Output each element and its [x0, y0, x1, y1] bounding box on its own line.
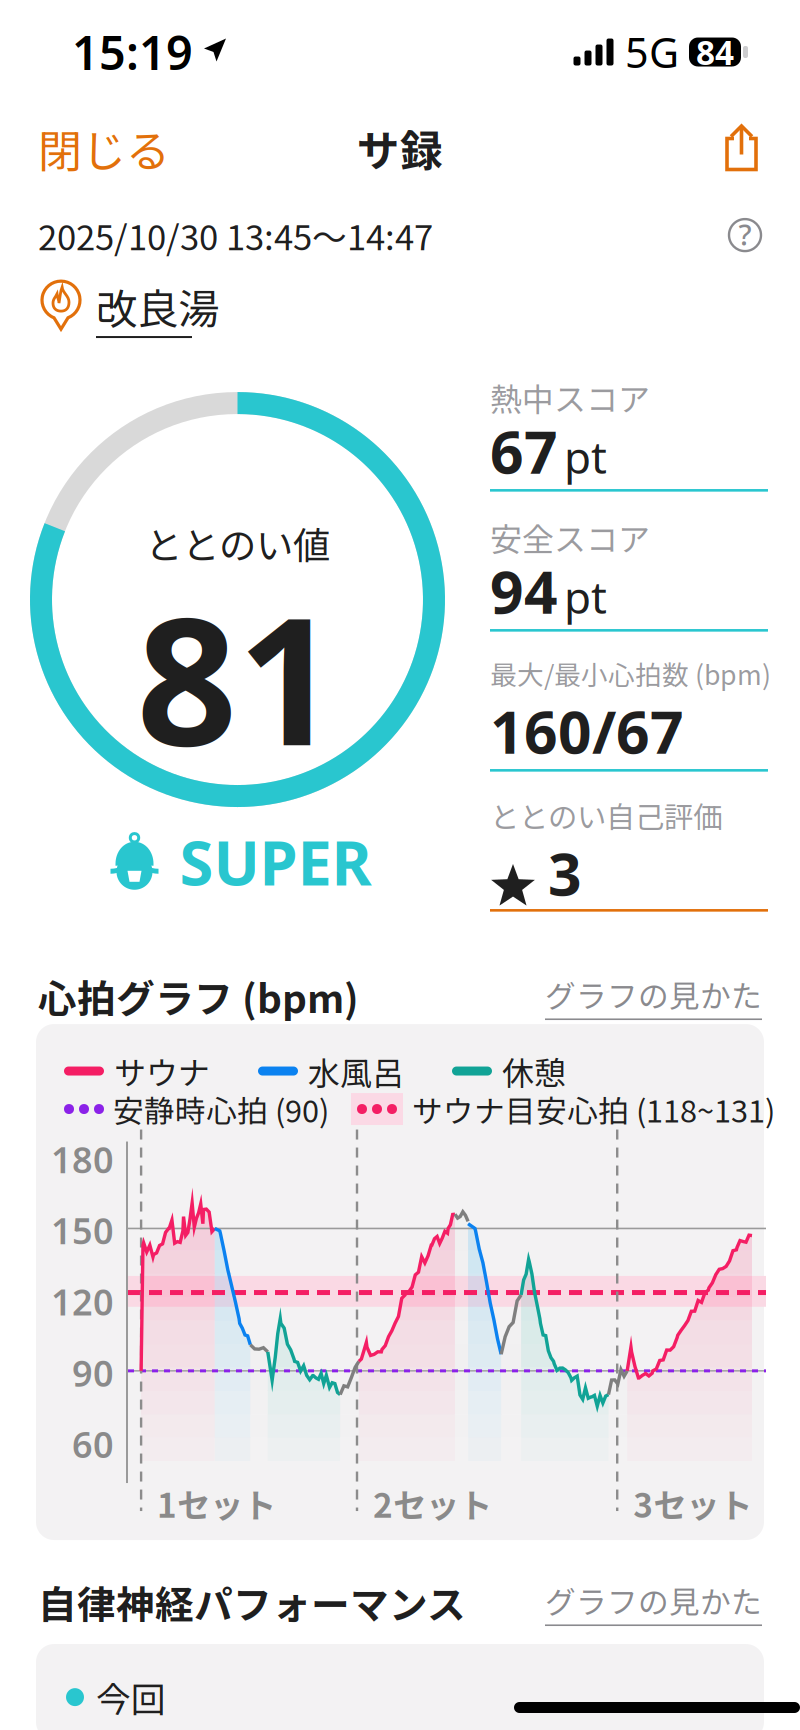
staticText: 60	[72, 1420, 114, 1468]
staticText: 自律神経パフォーマンス	[38, 1574, 466, 1630]
staticText: 3セット	[633, 1479, 752, 1527]
button[interactable]: ヘルプ	[728, 218, 762, 252]
staticText: 最大/最小心拍数 (bpm)	[490, 654, 771, 693]
staticText: サウナ	[114, 1048, 210, 1094]
staticText: 67	[490, 412, 558, 490]
staticText: 160/67	[490, 692, 684, 770]
staticText: 3	[548, 834, 582, 912]
staticText: 安静時心拍 (90)	[113, 1087, 329, 1131]
staticText: 180	[51, 1135, 114, 1183]
staticText: 5G	[625, 25, 679, 79]
staticText: SUPER	[179, 821, 371, 902]
staticText: 81	[136, 560, 338, 794]
button[interactable]: グラフの見かた	[545, 972, 762, 1020]
button[interactable]: グラフの見かた	[545, 1578, 762, 1626]
staticText: 2025/10/30 13:45〜14:47	[38, 210, 433, 260]
button[interactable]: 共有	[721, 118, 762, 177]
staticText: pt	[564, 567, 607, 626]
staticText: グラフの見かた	[545, 1578, 762, 1622]
staticText: 熱中スコア	[490, 374, 650, 420]
staticText: ととのい値	[145, 516, 330, 570]
staticText: サウナ目安心拍 (118~131)	[412, 1087, 775, 1131]
staticText: 120	[51, 1278, 114, 1325]
staticText: 改良湯	[96, 276, 219, 336]
staticText: 閉じる	[38, 116, 170, 180]
staticText: ?	[738, 215, 751, 254]
button[interactable]: 改良湯	[38, 274, 219, 336]
staticText: グラフの見かた	[545, 972, 762, 1016]
staticText: 安全スコア	[490, 514, 650, 560]
staticText: 2セット	[373, 1479, 492, 1527]
staticText: 94	[490, 552, 558, 630]
staticText: 90	[72, 1349, 114, 1397]
staticText: 休憩	[502, 1048, 566, 1094]
staticText: 15:19	[72, 21, 193, 83]
staticText: サ録	[357, 117, 443, 179]
staticText: 水風呂	[308, 1048, 404, 1094]
staticText: ととのい自己評価	[490, 794, 722, 836]
staticText: 150	[51, 1206, 114, 1254]
staticText: 1セット	[157, 1479, 276, 1527]
staticText: pt	[564, 427, 607, 486]
staticText: 84	[696, 30, 734, 74]
staticText: 今回	[96, 1672, 166, 1722]
staticText: 心拍グラフ (bpm)	[38, 968, 359, 1024]
button[interactable]: 閉じる	[38, 106, 170, 190]
